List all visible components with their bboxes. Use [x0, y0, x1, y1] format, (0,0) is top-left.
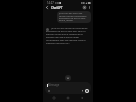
staticText: Message	[48, 83, 60, 87]
staticText: Je ne suis pas tout a fait certain de bi…	[59, 12, 89, 22]
button[interactable]: Dictate	[80, 89, 84, 93]
button[interactable]: Add attachment	[47, 89, 51, 93]
staticText: ChatGPT	[51, 6, 63, 10]
button[interactable]: Home	[65, 95, 71, 101]
button[interactable]: More options	[87, 5, 91, 10]
button[interactable]: Scroll to bottom	[65, 75, 71, 81]
button[interactable]: Back	[45, 5, 49, 10]
button[interactable]: Voice mode	[85, 89, 89, 93]
button[interactable]: Back	[79, 95, 85, 101]
button[interactable]: Message	[45, 82, 91, 94]
button[interactable]: Je ne suis pas tout a fait certain de bi…	[57, 11, 91, 23]
staticText: 14:27	[47, 1, 54, 5]
button[interactable]: Recents	[51, 95, 57, 101]
staticText: Je ne suis pas certain de comprendre exa…	[46, 27, 91, 45]
button[interactable]: New chat	[82, 5, 86, 10]
